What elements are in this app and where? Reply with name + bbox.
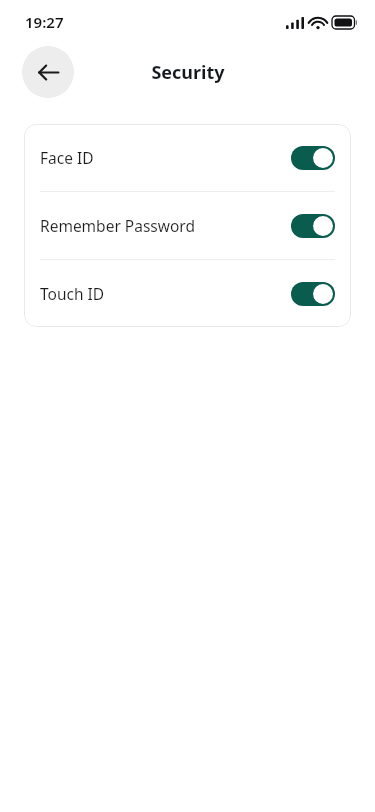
staticText: Touch ID <box>40 283 105 304</box>
staticText: Security <box>151 60 225 85</box>
button[interactable]: Touch ID <box>24 260 351 327</box>
staticText: Face ID <box>40 147 94 168</box>
button[interactable]: Toggle on <box>291 146 335 170</box>
button[interactable]: Face ID <box>24 124 351 191</box>
staticText: 19:27 <box>25 12 64 32</box>
button[interactable]: Toggle on <box>291 214 335 238</box>
button[interactable]: Back <box>22 46 74 98</box>
button[interactable]: Remember Password <box>24 192 351 259</box>
staticText: Remember Password <box>40 215 195 236</box>
button[interactable]: Toggle on <box>291 282 335 306</box>
